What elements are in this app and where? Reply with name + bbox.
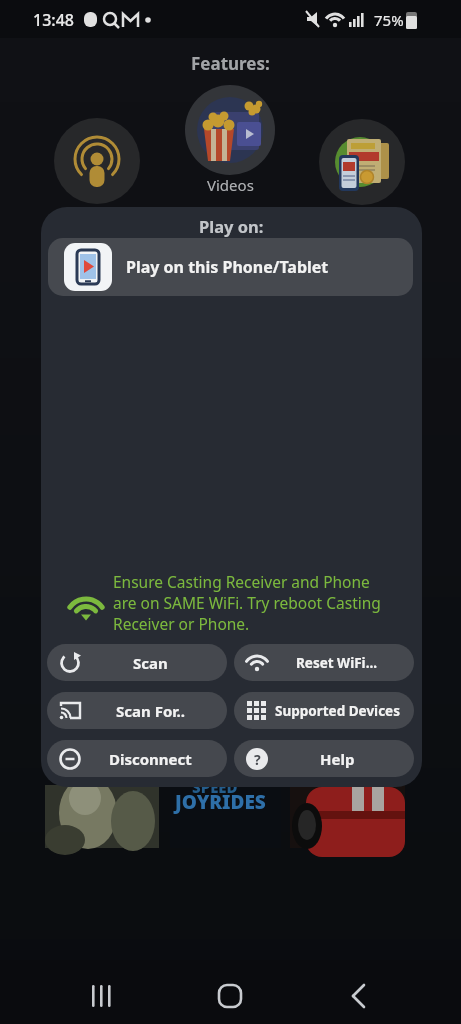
- button[interactable]: [352, 985, 365, 1007]
- staticText: Reset WiFi...: [296, 654, 378, 672]
- staticText: Supported Devices: [275, 702, 400, 720]
- staticText: Receiver or Phone.: [113, 613, 250, 634]
- staticText: Scan: [133, 653, 168, 673]
- staticText: 13:48: [33, 9, 74, 31]
- staticText: Ensure Casting Receiver and Phone: [113, 571, 370, 592]
- button[interactable]: Scan: [47, 644, 227, 681]
- staticText: Play on:: [199, 215, 264, 237]
- staticText: Features:: [191, 52, 270, 75]
- button[interactable]: [219, 985, 241, 1007]
- staticText: Videos: [207, 175, 254, 195]
- staticText: Disconnect: [109, 749, 192, 769]
- button[interactable]: Scan For..: [47, 692, 227, 729]
- staticText: are on SAME WiFi. Try reboot Casting: [113, 592, 381, 613]
- button[interactable]: [185, 85, 275, 175]
- staticText: ?: [254, 750, 261, 769]
- button[interactable]: ?: [234, 740, 414, 777]
- button[interactable]: Play on this Phone/Tablet: [48, 238, 413, 296]
- staticText: Scan For..: [116, 701, 185, 721]
- staticText: SPEED: [192, 777, 238, 797]
- staticText: Help: [320, 749, 355, 769]
- staticText: Play on this Phone/Tablet: [126, 256, 329, 278]
- staticText: JOYRIDES: [175, 789, 266, 815]
- staticText: 75%: [374, 10, 404, 30]
- button[interactable]: [54, 118, 140, 204]
- button[interactable]: Disconnect: [47, 740, 227, 777]
- button[interactable]: Reset WiFi...: [234, 644, 414, 681]
- button[interactable]: [319, 119, 405, 205]
- button[interactable]: [92, 985, 112, 1007]
- button[interactable]: Supported Devices: [234, 692, 414, 729]
